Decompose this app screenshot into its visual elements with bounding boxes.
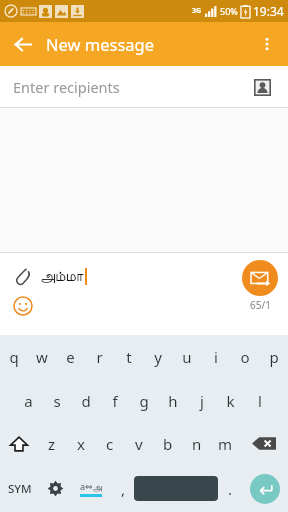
button[interactable]: Attach — [10, 263, 36, 289]
button[interactable]: z — [38, 422, 66, 465]
button[interactable]: x — [66, 422, 95, 465]
staticText: q — [9, 347, 19, 367]
staticText: 3G — [192, 6, 202, 16]
button[interactable]: u — [172, 335, 201, 379]
other: Space — [134, 476, 218, 501]
staticText: b — [163, 434, 173, 454]
staticText: 19:34 — [253, 3, 284, 19]
staticText: h — [168, 391, 178, 411]
staticText: k — [226, 391, 235, 411]
button[interactable]: w — [28, 335, 56, 379]
staticText: j — [200, 391, 204, 411]
staticText: z — [48, 434, 56, 454]
button[interactable]: t — [114, 335, 143, 379]
button[interactable]: j — [187, 379, 216, 422]
staticText: p — [269, 347, 279, 367]
staticText: y — [154, 347, 162, 367]
staticText: t — [126, 347, 132, 367]
button[interactable]: Send — [242, 260, 278, 296]
button[interactable]: o — [230, 335, 259, 379]
staticText: u — [182, 347, 192, 367]
button[interactable]: Enter recipients — [0, 66, 288, 107]
button[interactable]: n — [182, 422, 211, 465]
staticText: n — [192, 434, 202, 454]
button[interactable]: Emoji — [10, 293, 36, 319]
staticText: 65/1 — [250, 298, 271, 312]
button[interactable]: e — [56, 335, 85, 379]
staticText: x — [77, 434, 85, 454]
button[interactable]: v — [124, 422, 153, 465]
staticText: a — [24, 391, 33, 411]
button[interactable]: Pick contact — [249, 74, 275, 100]
staticText: m — [218, 434, 233, 454]
staticText: அம்மா — [40, 269, 84, 284]
staticText: c — [106, 434, 114, 454]
button[interactable]: b — [153, 422, 182, 465]
button[interactable]: Change language — [70, 465, 112, 512]
button[interactable]: Backspace — [240, 422, 288, 465]
staticText: s — [53, 391, 61, 411]
button[interactable]: m — [211, 422, 240, 465]
button[interactable]: Enter — [242, 465, 288, 512]
button[interactable]: g — [129, 379, 158, 422]
button[interactable]: k — [216, 379, 245, 422]
staticText: i — [214, 347, 218, 367]
button[interactable]: h — [158, 379, 187, 422]
button[interactable]: More options — [250, 27, 284, 61]
staticText: 50% — [220, 5, 238, 17]
staticText: Enter recipients — [13, 77, 249, 97]
button[interactable]: y — [143, 335, 172, 379]
button[interactable]: s — [42, 379, 71, 422]
staticText: l — [258, 391, 262, 411]
staticText: a⇔அ — [80, 480, 102, 492]
button[interactable]: c — [95, 422, 124, 465]
staticText: e — [66, 347, 75, 367]
staticText: . — [228, 479, 233, 499]
button[interactable]: q — [0, 335, 28, 379]
button[interactable]: a — [14, 379, 42, 422]
staticText: o — [240, 347, 250, 367]
staticText: SYM — [8, 481, 32, 497]
button[interactable]: Shift — [0, 422, 38, 465]
button[interactable]: d — [71, 379, 100, 422]
button[interactable]: p — [259, 335, 288, 379]
button[interactable]: . — [218, 465, 242, 512]
staticText: f — [112, 391, 118, 411]
staticText: r — [96, 347, 103, 367]
button[interactable]: SYM — [0, 465, 40, 512]
button[interactable]: Settings — [40, 465, 70, 512]
button[interactable]: Back — [6, 27, 40, 61]
staticText: g — [139, 391, 149, 411]
button[interactable]: i — [201, 335, 230, 379]
staticText: v — [135, 434, 143, 454]
button[interactable]: Space — [134, 476, 218, 501]
staticText: d — [81, 391, 91, 411]
staticText: New message — [46, 33, 155, 55]
button[interactable]: l — [245, 379, 274, 422]
staticText: , — [121, 479, 126, 499]
button[interactable]: r — [85, 335, 114, 379]
button[interactable]: , — [112, 465, 134, 512]
staticText: w — [36, 347, 48, 367]
button[interactable]: f — [100, 379, 129, 422]
